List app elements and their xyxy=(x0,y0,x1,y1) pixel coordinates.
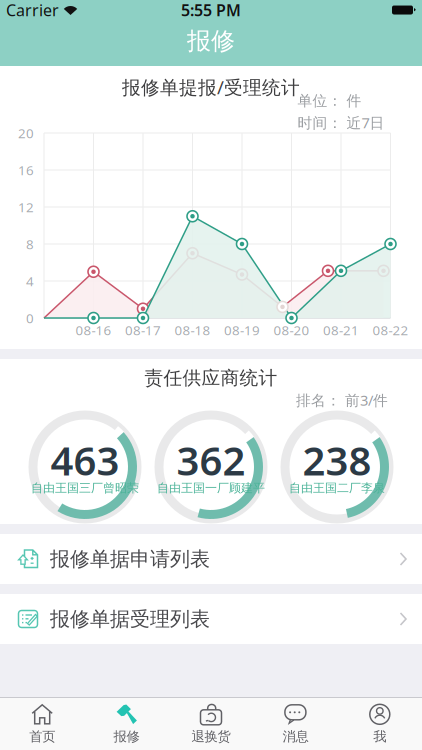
staticText: 8 xyxy=(26,235,34,253)
staticText: 排名： 前3/件 xyxy=(296,390,388,410)
staticText: 08-16 xyxy=(75,321,111,339)
staticText: 238 xyxy=(302,433,371,486)
staticText: 报修单据申请列表 xyxy=(50,547,210,571)
staticText: 0 xyxy=(26,309,34,327)
staticText: 08-19 xyxy=(224,321,260,339)
staticText: 首页 xyxy=(29,728,55,745)
staticText: Carrier xyxy=(6,0,59,21)
staticText: 自由王国一厂顾建平 xyxy=(157,481,265,495)
staticText: 362 xyxy=(176,433,245,486)
staticText: 5:55 PM xyxy=(181,0,241,21)
button[interactable]: 报修 xyxy=(84,699,169,749)
staticText: 08-18 xyxy=(174,321,210,339)
button[interactable]: 报修单据申请列表 xyxy=(0,534,422,584)
staticText: 自由王国三厂曾昭荣 xyxy=(31,481,139,495)
button[interactable]: 我 xyxy=(338,699,422,749)
staticText: 报修单提报/受理统计 xyxy=(122,75,300,99)
button[interactable]: 消息 xyxy=(253,699,338,749)
staticText: 12 xyxy=(18,198,34,216)
staticText: 4 xyxy=(26,272,34,290)
staticText: 单位： 件 xyxy=(297,92,361,110)
staticText: 报修单据受理列表 xyxy=(50,607,210,631)
staticText: 责任供应商统计 xyxy=(144,366,277,389)
staticText: 自由王国二厂李泉 xyxy=(289,481,385,495)
staticText: 08-20 xyxy=(273,321,309,339)
button[interactable]: 首页 xyxy=(0,699,84,749)
staticText: 我 xyxy=(373,728,386,745)
staticText: 463 xyxy=(50,433,119,486)
staticText: 16 xyxy=(18,161,34,179)
staticText: 20 xyxy=(18,124,34,142)
staticText: 08-17 xyxy=(125,321,161,339)
button[interactable]: 退换货 xyxy=(169,699,253,749)
staticText: 报修 xyxy=(114,728,140,745)
staticText: 消息 xyxy=(282,728,308,745)
button[interactable]: 报修单据受理列表 xyxy=(0,594,422,644)
staticText: 时间： 近7日 xyxy=(297,113,384,132)
staticText: 08-22 xyxy=(372,321,408,339)
staticText: 退换货 xyxy=(191,728,230,745)
staticText: 报修 xyxy=(187,26,235,56)
staticText: 08-21 xyxy=(323,321,359,339)
